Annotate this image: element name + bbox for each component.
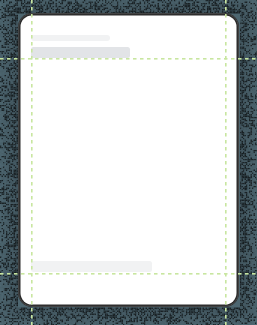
button[interactable]: Title placeholder (31, 47, 130, 58)
button[interactable]: Device preview canvas (21, 16, 236, 304)
button[interactable]: Subtitle placeholder (31, 35, 110, 41)
button[interactable]: Footer placeholder (31, 261, 152, 272)
